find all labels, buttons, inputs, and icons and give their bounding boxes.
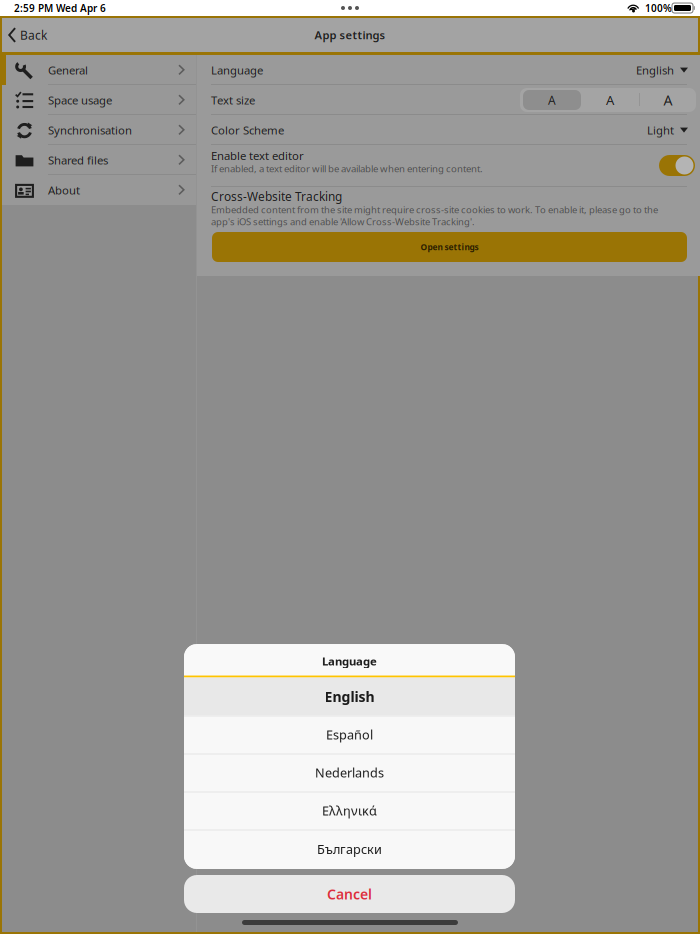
button[interactable]: Cancel (184, 875, 515, 913)
staticText: Wed Apr 6 (56, 1, 106, 15)
staticText: 100% (645, 1, 672, 15)
button[interactable]: Ελληνικά (184, 791, 515, 829)
staticText: English (636, 62, 674, 78)
staticText: 2:59 PM (14, 1, 53, 15)
button[interactable]: Back (8, 18, 58, 52)
staticText: A (548, 92, 556, 108)
button[interactable]: Български (184, 829, 515, 868)
button[interactable]: Español (184, 715, 515, 753)
staticText: Enable text editor (211, 148, 304, 163)
button[interactable]: English (184, 677, 515, 715)
button[interactable]: A (639, 88, 697, 112)
button[interactable]: Synchronisation (2, 115, 196, 145)
staticText: app's iOS settings and enable 'Allow Cro… (211, 215, 475, 228)
staticText: Color Scheme (211, 122, 284, 138)
staticText: Back (20, 27, 47, 43)
staticText: Space usage (48, 92, 112, 108)
button[interactable]: Space usage (2, 85, 196, 115)
staticText: A (606, 91, 614, 109)
staticText: Language (211, 62, 263, 78)
button[interactable]: Enable text editor (659, 155, 695, 176)
button[interactable]: Nederlands (184, 753, 515, 791)
button[interactable]: Language (197, 55, 700, 85)
staticText: Shared files (48, 152, 108, 168)
button[interactable]: A (523, 88, 581, 112)
button[interactable]: About (2, 175, 196, 205)
staticText: About (48, 182, 80, 198)
staticText: Español (326, 726, 373, 743)
staticText: General (48, 62, 88, 78)
staticText: If enabled, a text editor will be availa… (211, 162, 483, 175)
button[interactable]: Color Scheme (197, 115, 700, 145)
button[interactable]: Shared files (2, 145, 196, 175)
staticText: English (324, 687, 374, 706)
staticText: Cancel (327, 884, 372, 904)
staticText: Synchronisation (48, 122, 132, 138)
staticText: Open settings (420, 241, 478, 253)
staticText: Български (317, 840, 382, 858)
staticText: Language (322, 653, 377, 669)
staticText: Light (647, 122, 674, 138)
button[interactable]: General (2, 55, 196, 85)
button[interactable]: Open settings (212, 232, 687, 262)
staticText: Nederlands (315, 764, 384, 781)
staticText: Text size (211, 92, 255, 108)
staticText: Embedded content from the site might req… (211, 203, 658, 216)
staticText: Cross-Website Tracking (211, 188, 342, 205)
staticText: Ελληνικά (322, 802, 377, 819)
staticText: A (663, 90, 672, 110)
button[interactable]: A (581, 88, 639, 112)
staticText: App settings (314, 27, 385, 43)
